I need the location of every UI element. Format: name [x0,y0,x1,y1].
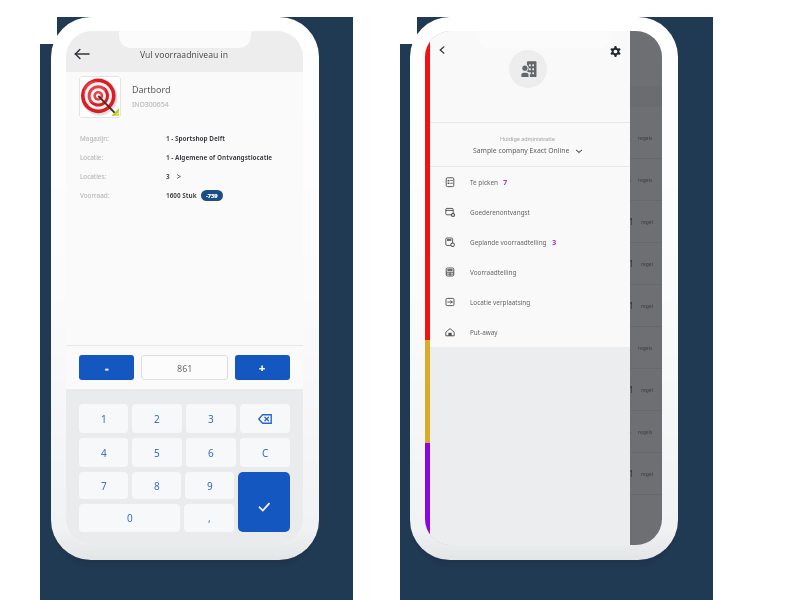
staticText: 6 [208,446,214,460]
button[interactable]: Backspace [240,404,290,433]
button[interactable]: Voorraadtelling [425,257,630,287]
button[interactable]: 4 [79,438,128,467]
staticText: C [262,446,269,460]
staticText: 1 - Sportshop Delft [166,134,225,143]
staticText: regel [641,261,653,268]
staticText: 2 [626,132,631,144]
staticText: - [105,360,109,375]
staticText: -739 [206,192,218,200]
staticText: 0 [127,511,133,525]
staticText: 7 [503,177,508,187]
staticText: Locatie verplaatsing [470,298,531,307]
staticText: 3 [166,172,170,181]
staticText: IND300654 [132,100,169,110]
staticText: 2 [626,342,631,354]
staticText: 1600 Stuk [166,191,197,200]
button[interactable]: Geplande voorraadtelling [425,227,630,257]
staticText: Sample company Exact Online [473,146,570,155]
button[interactable]: 7 [79,472,128,499]
staticText: 8 [154,479,160,493]
button[interactable]: 1 [79,404,128,433]
staticText: 3 [626,174,631,186]
staticText: 2 [154,412,160,426]
staticText: 3 [626,426,631,438]
staticText: 1 [629,384,634,396]
button[interactable]: Locatie verplaatsing [425,287,630,317]
staticText: 3 [208,412,214,426]
staticText: 1 [629,216,634,228]
button[interactable]: 8 [132,472,181,499]
staticText: Magazijn: [80,134,166,143]
button[interactable]: , [184,504,234,532]
staticText: 1 - Algemene of Ontvangstlocatie [166,153,273,162]
staticText: Goederenontvangst [470,208,530,217]
staticText: regel [641,471,653,478]
button[interactable]: Te picken [425,167,630,197]
staticText: regel [641,387,653,394]
button[interactable]: 6 [186,438,236,467]
button[interactable]: Confirm [238,472,290,532]
staticText: Locaties: [80,172,166,181]
button[interactable]: Increase [235,355,290,380]
staticText: 1 [629,258,634,270]
button[interactable]: Back [434,42,450,58]
button[interactable]: Decrease [79,355,134,380]
staticText: Locatie: [80,153,166,162]
button[interactable]: Put-away [425,317,630,347]
staticText: , [208,511,211,525]
staticText: regels [638,345,653,352]
staticText: Voorraadtelling [470,268,517,277]
staticText: + [259,360,266,375]
staticText: Put-away [470,328,498,337]
button[interactable]: C [240,438,290,467]
button[interactable]: 2 [132,404,182,433]
staticText: 861 [177,362,193,374]
staticText: regels [638,429,653,436]
staticText: 3 [552,237,557,247]
button[interactable]: 9 [185,472,234,499]
button[interactable]: Settings [607,43,624,60]
staticText: Vul voorraadniveau in [140,49,229,61]
staticText: Te picken [470,178,498,187]
staticText: 4 [101,446,107,460]
button[interactable]: 3 [186,404,236,433]
staticText: regel [641,219,653,226]
staticText: 9 [207,479,213,493]
staticText: 5 [154,446,160,460]
button[interactable]: 0 [79,504,180,532]
staticText: regels [638,177,653,184]
staticText: Huidige administratie [500,135,555,142]
staticText: 7 [101,479,107,493]
staticText: 1 [101,412,107,426]
staticText: regel [641,303,653,310]
button[interactable]: 5 [132,438,182,467]
staticText: regels [638,135,653,142]
button[interactable]: Back [71,43,93,65]
staticText: 1 [629,300,634,312]
staticText: 1 [629,468,634,480]
staticText: Geplande voorraadtelling [470,238,547,247]
staticText: Dartbord [132,83,171,95]
staticText: Voorraad: [80,191,166,200]
button[interactable]: Goederenontvangst [425,197,630,227]
